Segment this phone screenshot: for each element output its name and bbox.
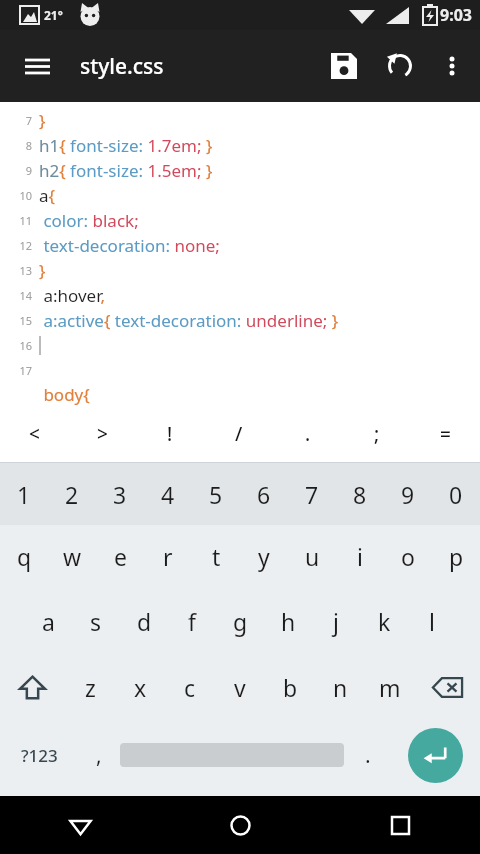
staticText: o	[401, 541, 415, 572]
button[interactable]: Backspace	[415, 654, 480, 720]
staticText: 17	[19, 363, 32, 378]
button[interactable]: 1	[0, 463, 48, 525]
staticText: d	[137, 606, 152, 637]
button[interactable]: 7	[0, 102, 480, 406]
button[interactable]: 0	[432, 463, 480, 525]
staticText: .	[365, 741, 371, 770]
button[interactable]: Save	[316, 38, 372, 94]
button[interactable]: h	[264, 588, 312, 654]
staticText: .	[305, 421, 311, 447]
button[interactable]: t	[192, 525, 240, 588]
button[interactable]: ;	[342, 406, 411, 462]
staticText: z	[85, 672, 96, 703]
staticText: 1	[17, 479, 31, 510]
staticText: v	[234, 672, 246, 703]
staticText: h2{ font-size: 1.5em; }	[39, 159, 213, 182]
staticText: <	[29, 421, 40, 447]
staticText: 4	[161, 479, 175, 510]
button[interactable]: 3	[96, 463, 144, 525]
staticText: 7	[305, 479, 319, 510]
staticText: y	[258, 541, 270, 572]
staticText: 9	[25, 163, 32, 178]
button[interactable]: r	[144, 525, 192, 588]
button[interactable]: z	[65, 654, 115, 720]
button[interactable]: Back	[0, 796, 160, 854]
staticText: t	[212, 541, 221, 572]
button[interactable]: <	[0, 406, 68, 462]
button[interactable]: p	[432, 525, 480, 588]
button[interactable]: Recents	[320, 796, 480, 854]
button[interactable]: 7	[288, 463, 336, 525]
staticText: 8	[25, 138, 32, 153]
button[interactable]: /	[204, 406, 273, 462]
button[interactable]: n	[315, 654, 365, 720]
button[interactable]: u	[288, 525, 336, 588]
staticText: !	[167, 421, 173, 447]
button[interactable]: Enter	[408, 728, 463, 783]
button[interactable]: !	[136, 406, 204, 462]
button[interactable]: 5	[192, 463, 240, 525]
button[interactable]: ,	[78, 720, 120, 790]
staticText: x	[134, 672, 147, 703]
button[interactable]: 8	[336, 463, 384, 525]
button[interactable]: >	[68, 406, 136, 462]
button[interactable]: w	[48, 525, 96, 588]
button[interactable]: Menu	[12, 41, 62, 91]
staticText: m	[379, 672, 401, 703]
button[interactable]: v	[215, 654, 265, 720]
staticText: 8	[353, 479, 367, 510]
button[interactable]: s	[72, 588, 120, 654]
staticText: 7	[25, 113, 32, 128]
staticText: p	[449, 541, 464, 572]
button[interactable]: Home	[160, 796, 320, 854]
staticText: 14	[19, 288, 32, 303]
button[interactable]: i	[336, 525, 384, 588]
button[interactable]: y	[240, 525, 288, 588]
staticText: 0	[449, 479, 463, 510]
staticText: 21°	[44, 7, 63, 23]
button[interactable]: 9	[384, 463, 432, 525]
staticText: u	[305, 541, 320, 572]
staticText: 15	[19, 313, 32, 328]
button[interactable]: a	[24, 588, 72, 654]
staticText: 9	[401, 479, 415, 510]
button[interactable]: k	[360, 588, 408, 654]
staticText: 9:03	[440, 4, 472, 26]
staticText: h1{ font-size: 1.7em; }	[39, 134, 213, 157]
button[interactable]: g	[216, 588, 264, 654]
button[interactable]: Undo	[372, 38, 428, 94]
button[interactable]: q	[0, 525, 48, 588]
button[interactable]: j	[312, 588, 360, 654]
button[interactable]: ?123	[0, 720, 78, 790]
button[interactable]: 6	[240, 463, 288, 525]
button[interactable]: 4	[144, 463, 192, 525]
button[interactable]: .	[344, 720, 391, 790]
button[interactable]: e	[96, 525, 144, 588]
staticText: c	[184, 672, 196, 703]
button[interactable]: c	[165, 654, 215, 720]
staticText: 3	[113, 479, 127, 510]
button[interactable]: .	[273, 406, 342, 462]
button[interactable]: =	[411, 406, 480, 462]
button[interactable]: l	[408, 588, 456, 654]
button[interactable]: b	[265, 654, 315, 720]
button[interactable]: m	[365, 654, 415, 720]
staticText: 6	[257, 479, 271, 510]
staticText: 2	[65, 479, 79, 510]
staticText: j	[333, 606, 339, 637]
button[interactable]: f	[168, 588, 216, 654]
staticText: f	[188, 606, 196, 637]
button[interactable]: o	[384, 525, 432, 588]
button[interactable]: x	[115, 654, 165, 720]
button[interactable]: d	[120, 588, 168, 654]
staticText: }	[39, 259, 46, 282]
staticText: 10	[19, 188, 32, 203]
button[interactable]: More options	[428, 42, 476, 90]
staticText: =	[440, 421, 451, 447]
staticText: body{	[39, 383, 90, 406]
button[interactable]: Shift	[0, 654, 65, 720]
staticText: h	[281, 606, 296, 637]
staticText: w	[63, 541, 82, 572]
button[interactable]: 2	[48, 463, 96, 525]
